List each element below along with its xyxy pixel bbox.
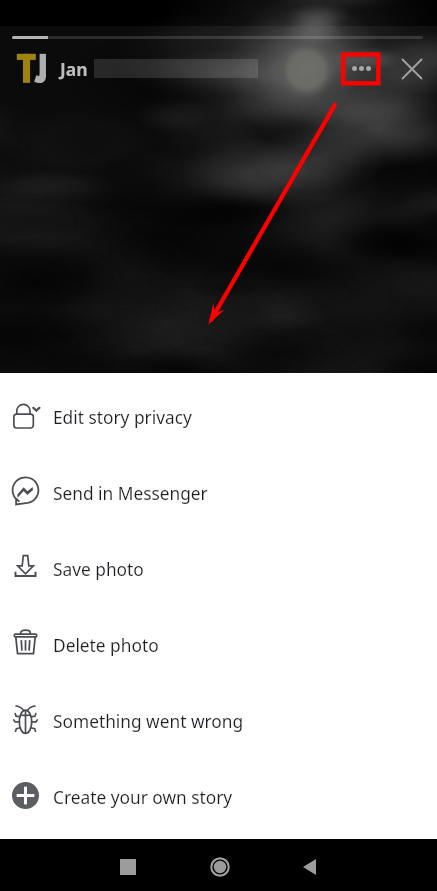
staticText: Something went wrong	[53, 710, 244, 734]
staticText: Create your own story	[53, 786, 233, 810]
button[interactable]: Home	[198, 845, 242, 889]
staticText: Save photo	[53, 558, 144, 582]
button[interactable]: Delete photo	[0, 608, 437, 684]
button[interactable]: Send in Messenger	[0, 456, 437, 532]
button[interactable]: Recents	[106, 845, 150, 889]
button[interactable]: Back	[287, 845, 331, 889]
button[interactable]: Save photo	[0, 532, 437, 608]
button[interactable]: Something went wrong	[0, 684, 437, 760]
button[interactable]: Close	[393, 50, 430, 87]
button[interactable]: More options	[341, 52, 381, 85]
staticText: Send in Messenger	[53, 482, 208, 506]
staticText: Delete photo	[53, 634, 159, 658]
button[interactable]: Edit story privacy	[0, 380, 437, 456]
staticText: Edit story privacy	[53, 406, 192, 430]
button[interactable]: Create your own story	[0, 760, 437, 836]
staticText: Jan	[60, 57, 88, 81]
